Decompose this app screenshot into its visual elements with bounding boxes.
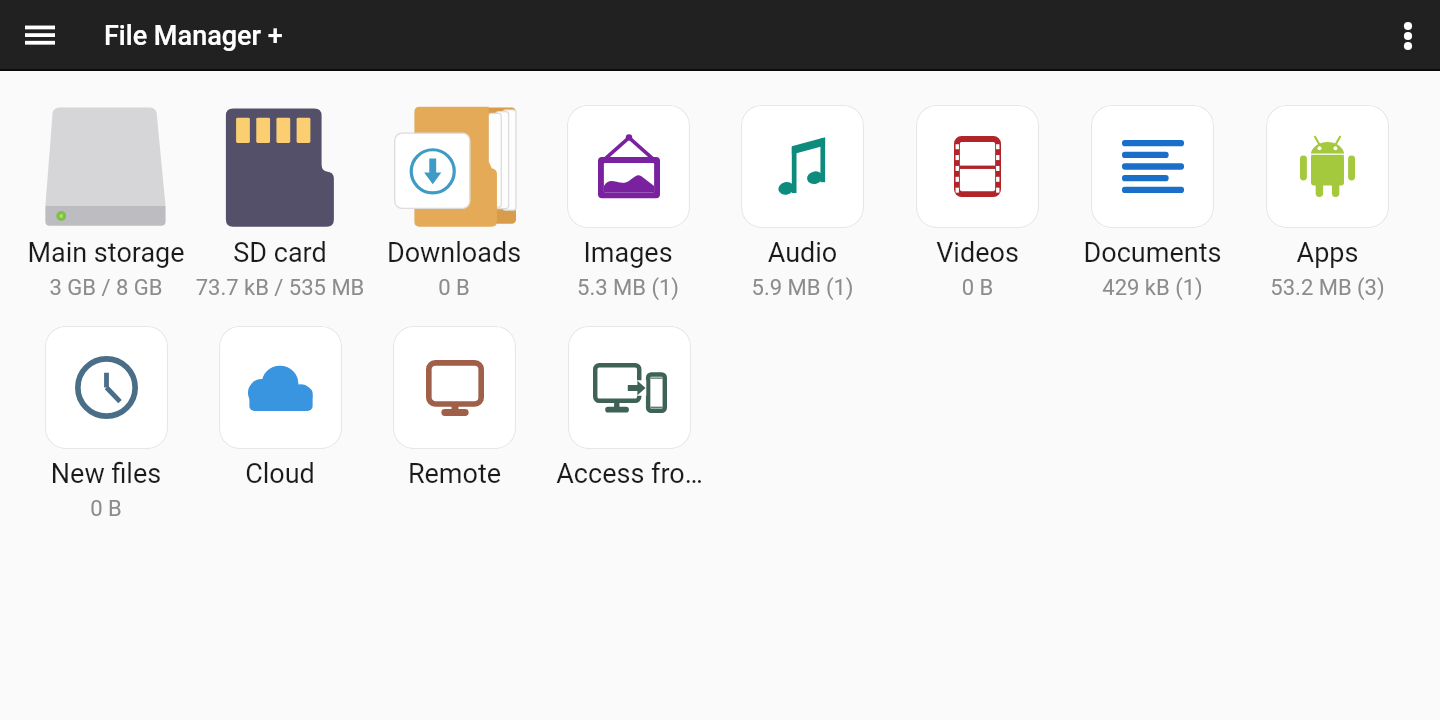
button[interactable]: Open navigation menu [16,12,64,60]
button[interactable]: Downloads [367,105,541,301]
staticText: 0 B [890,275,1065,301]
staticText: 0 B [367,275,541,301]
staticText: 73.7 kB / 535 MB [193,275,367,301]
staticText: SD card [195,237,365,269]
button[interactable]: Main storage [19,105,193,301]
button[interactable]: New files [19,326,193,522]
staticText: 3 GB / 8 GB [19,275,193,301]
staticText: 0 B [19,496,193,522]
staticText: Downloads [369,237,539,269]
staticText: Images [543,237,713,269]
staticText: Access fro… [544,458,715,490]
button[interactable]: SD card [193,105,367,301]
button[interactable]: More options [1384,12,1432,60]
staticText: 429 kB (1) [1065,275,1240,301]
button[interactable]: Images [541,105,715,301]
button[interactable]: Access fro… [542,326,717,496]
staticText: 5.3 MB (1) [541,275,715,301]
staticText: Apps [1242,237,1413,269]
staticText: Documents [1067,237,1238,269]
button[interactable]: Apps [1240,105,1415,301]
staticText: Audio [717,237,888,269]
button[interactable]: Remote [367,326,542,496]
staticText: New files [21,458,191,490]
staticText: File Manager + [104,20,283,52]
button[interactable]: Cloud [193,326,367,496]
staticText: 53.2 MB (3) [1240,275,1415,301]
button[interactable]: Videos [890,105,1065,301]
button[interactable]: Documents [1065,105,1240,301]
staticText: Remote [369,458,540,490]
button[interactable]: Audio [715,105,890,301]
staticText: 5.9 MB (1) [715,275,890,301]
staticText: Videos [892,237,1063,269]
staticText: Cloud [195,458,365,490]
staticText: Main storage [21,237,191,269]
